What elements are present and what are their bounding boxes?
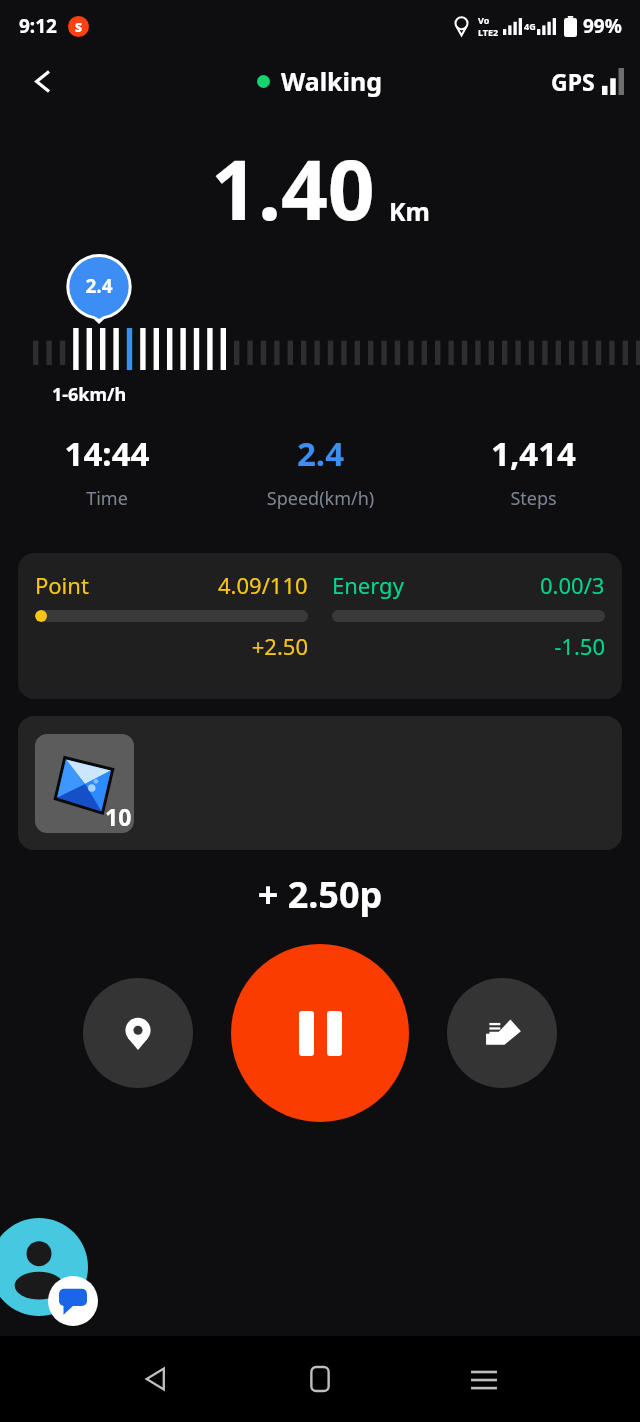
staticText: 9:12 (19, 13, 57, 39)
button[interactable]: Menu (452, 1347, 516, 1411)
staticText: 2.4 (214, 431, 427, 476)
button[interactable]: Home (288, 1347, 352, 1411)
staticText: 1-6km/h (52, 382, 127, 407)
staticText: 10 (105, 801, 132, 832)
staticText: + 2.50p (0, 870, 640, 919)
staticText: 4G (524, 20, 536, 32)
staticText: GPS (551, 66, 595, 97)
button[interactable]: Location (83, 978, 193, 1088)
staticText: 2.4 (66, 273, 132, 299)
staticText: 4.09/110 (218, 570, 308, 600)
button[interactable]: Point (18, 553, 622, 699)
staticText: Time (0, 486, 214, 511)
staticText: +2.50 (35, 631, 308, 661)
button[interactable]: GPS signal (551, 66, 624, 97)
staticText: 99% (583, 13, 622, 39)
staticText: -1.50 (332, 631, 605, 661)
staticText: Speed(km/h) (214, 486, 427, 511)
staticText: S (75, 19, 82, 35)
staticText: Walking (281, 64, 383, 98)
button[interactable]: Back (124, 1347, 188, 1411)
staticText: LTE2 (478, 26, 499, 38)
staticText: 1,414 (427, 431, 640, 476)
button[interactable]: Pause (231, 944, 409, 1122)
staticText: 1.40 (211, 132, 375, 244)
button[interactable]: Chat (0, 1218, 98, 1326)
button[interactable]: Back (16, 54, 70, 108)
button[interactable]: Gem item, 10 (18, 716, 622, 850)
staticText: 0.00/3 (540, 570, 605, 600)
staticText: Km (389, 194, 430, 228)
staticText: 14:44 (0, 431, 214, 476)
button[interactable]: Gem item, 10 (35, 734, 134, 833)
staticText: Steps (427, 486, 640, 511)
staticText: Point (35, 570, 89, 600)
staticText: Energy (332, 570, 404, 600)
staticText: Vo (478, 14, 490, 26)
button[interactable]: Activity type (447, 978, 557, 1088)
